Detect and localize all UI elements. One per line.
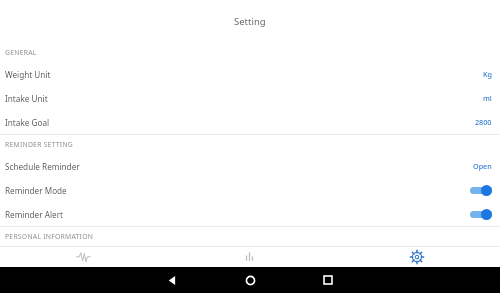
button[interactable]: Home — [211, 267, 289, 293]
staticText: ml — [483, 93, 492, 103]
button[interactable]: Back — [133, 267, 211, 293]
button[interactable]: Activity — [0, 246, 166, 267]
staticText: Open — [473, 161, 492, 171]
button[interactable]: Statistics — [166, 246, 333, 267]
staticText: PERSONAL INFORMATION — [5, 232, 94, 241]
button[interactable]: Toggle — [468, 207, 492, 221]
staticText: Intake Unit — [5, 93, 48, 104]
button[interactable]: Intake Goal — [0, 110, 500, 134]
staticText: 2800 — [475, 117, 492, 127]
staticText: Weight Unit — [5, 69, 51, 80]
button[interactable]: Reminder Alert — [0, 202, 500, 226]
staticText: Reminder Mode — [5, 185, 67, 196]
button[interactable]: Intake Unit — [0, 86, 500, 110]
button[interactable]: Reminder Mode — [0, 178, 500, 202]
staticText: Setting — [234, 15, 266, 28]
button[interactable]: Recents — [289, 267, 367, 293]
staticText: REMINDER SETTING — [5, 140, 73, 149]
button[interactable]: Toggle — [468, 183, 492, 197]
button[interactable]: Weight Unit — [0, 62, 500, 86]
staticText: Schedule Reminder — [5, 161, 80, 172]
button[interactable]: Settings — [333, 246, 500, 267]
staticText: GENERAL — [5, 48, 37, 57]
staticText: Kg — [483, 69, 492, 79]
button[interactable]: Schedule Reminder — [0, 154, 500, 178]
staticText: Intake Goal — [5, 117, 50, 128]
staticText: Reminder Alert — [5, 209, 64, 220]
